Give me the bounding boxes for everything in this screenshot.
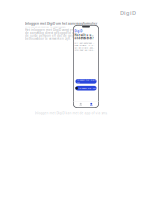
staticText: Het inloggen met DigiD zorgt ervoor dat	[25, 28, 85, 32]
button[interactable]: Overzicht	[79, 103, 82, 105]
staticText: betrouwbaar te verwerken zijn.	[25, 37, 71, 41]
staticText: in te vullen en digitaal te ondertekenen…	[25, 25, 66, 28]
staticText: DigiD	[74, 29, 82, 33]
staticText: met DigiD. U kunt kiezen	[74, 43, 94, 47]
staticText: ondertekenen?	[74, 37, 93, 40]
staticText: Bij een aanvraag tekent u	[74, 41, 94, 44]
staticText: Inloggen met DigiD kan met de app of via…	[34, 111, 107, 115]
staticText: Inloggen met sms	[79, 87, 97, 89]
staticText: Inloggen met DigiD app	[76, 79, 95, 84]
button[interactable]: DigiD	[120, 9, 136, 17]
button[interactable]: Inloggen met DigiD app	[75, 79, 97, 84]
button[interactable]: Inloggen met sms	[75, 86, 97, 90]
staticText: Hoe wilt u uw aanvraag	[74, 34, 94, 37]
staticText: de juiste persoon en dat de gegevens	[25, 34, 82, 38]
button[interactable]: Inloggen	[90, 103, 93, 105]
staticText: DigiD	[120, 9, 136, 17]
staticText: uit de DigiD app of een	[74, 46, 94, 49]
staticText: Inloggen met DigiD om het aanvraagformul…	[25, 21, 97, 26]
staticText: de aanvraag direct gekoppeld wordt aan	[25, 31, 87, 35]
staticText: sms naar uw telefoon.	[74, 48, 94, 52]
